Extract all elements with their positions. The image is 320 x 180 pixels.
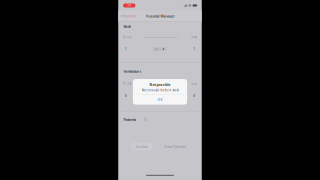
staticText: Not possible — [149, 82, 170, 87]
staticText: 9:41 — [127, 4, 131, 7]
button[interactable]: View Patients — [162, 142, 188, 151]
staticText: Confirm — [136, 144, 148, 149]
staticText: View Patients — [164, 144, 186, 149]
staticText: Beds — [123, 24, 131, 29]
staticText: 1 — [193, 47, 195, 51]
button[interactable]: Hospitals — [118, 12, 137, 20]
staticText: 0 — [144, 118, 146, 122]
button[interactable]: Increase — [160, 47, 167, 51]
staticText: 0 — [193, 93, 195, 98]
staticText: Hospitals — [123, 14, 136, 18]
staticText: Ventilators — [123, 69, 141, 74]
button[interactable]: OK — [133, 95, 187, 105]
staticText: Not enough beds in stock — [141, 88, 178, 92]
staticText: Hospital Manager — [145, 14, 174, 18]
button[interactable]: Decrease — [153, 47, 160, 51]
button[interactable]: Confirm — [131, 142, 152, 151]
staticText: In use — [123, 35, 131, 39]
button[interactable]: Increase — [160, 94, 167, 98]
staticText: 0 — [125, 93, 127, 98]
staticText: OK — [157, 98, 162, 102]
button[interactable]: Decrease — [153, 94, 160, 98]
staticText: Total — [191, 35, 197, 39]
staticText: Patients — [123, 117, 136, 122]
staticText: In use — [123, 82, 131, 85]
staticText: 1 — [125, 47, 127, 51]
staticText: Total — [191, 82, 197, 85]
